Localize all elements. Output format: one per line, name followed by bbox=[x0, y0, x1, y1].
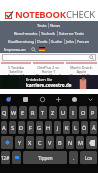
button[interactable]: Ä bbox=[90, 121, 97, 134]
button[interactable]: Sprache bbox=[39, 47, 45, 51]
button[interactable]: Suche bbox=[50, 39, 64, 44]
staticText: V bbox=[48, 139, 52, 146]
button[interactable]: Clipboard bbox=[50, 94, 66, 105]
button[interactable]: T bbox=[39, 106, 47, 119]
staticText: Tippen bbox=[38, 155, 53, 161]
button[interactable]: Hide keyboard bbox=[82, 94, 98, 105]
staticText: G bbox=[37, 124, 42, 131]
button[interactable]: Suche bbox=[30, 46, 36, 52]
staticText: Forum bbox=[77, 39, 90, 44]
button[interactable]: News bbox=[49, 23, 62, 28]
button[interactable]: Externe Tests bbox=[58, 31, 85, 36]
button[interactable]: B bbox=[56, 136, 64, 149]
staticText: Entdecken Sie bbox=[26, 77, 53, 82]
button[interactable]: W bbox=[10, 106, 17, 119]
button[interactable]: G bbox=[36, 121, 43, 134]
button[interactable]: Forum bbox=[76, 39, 91, 44]
staticText: U bbox=[61, 109, 66, 116]
button[interactable]: Macht Druck: Apple iPhone 6S Plus bbox=[66, 62, 97, 75]
button[interactable]: A bbox=[1, 121, 7, 134]
button[interactable]: V bbox=[46, 136, 54, 149]
staticText: Macht Druck: Apple iPhone 6S Plus bbox=[66, 65, 97, 75]
staticText: Tests bbox=[37, 23, 47, 28]
button[interactable]: J bbox=[54, 121, 61, 134]
button[interactable]: E bbox=[19, 106, 27, 119]
staticText: W bbox=[11, 109, 17, 116]
staticText: Technik bbox=[41, 31, 56, 36]
staticText: M bbox=[78, 139, 83, 146]
button[interactable]: Emoji bbox=[12, 151, 21, 164]
staticText: O bbox=[81, 109, 86, 116]
staticText: T bbox=[41, 109, 45, 116]
button[interactable]: L bbox=[72, 121, 79, 134]
button[interactable]: I bbox=[69, 106, 77, 119]
staticText: . bbox=[73, 154, 75, 161]
staticText: Impressum bbox=[4, 47, 26, 52]
staticText: L bbox=[74, 124, 77, 131]
button[interactable]: Tests bbox=[36, 23, 48, 28]
staticText: K bbox=[65, 124, 69, 131]
button[interactable]: Tippen bbox=[23, 151, 67, 164]
button[interactable]: Q bbox=[1, 106, 8, 119]
staticText: R bbox=[31, 109, 35, 116]
staticText: B bbox=[58, 139, 62, 146]
button[interactable]: D bbox=[18, 121, 25, 134]
staticText: H bbox=[46, 124, 51, 131]
button[interactable]: . bbox=[69, 151, 78, 164]
button[interactable]: Y bbox=[15, 136, 24, 149]
staticText: Deals bbox=[37, 39, 48, 44]
staticText: Z bbox=[51, 109, 55, 116]
staticText: X bbox=[28, 139, 32, 146]
button[interactable]: Los bbox=[80, 151, 97, 164]
button[interactable]: C bbox=[36, 136, 44, 149]
button[interactable]: Ö bbox=[81, 121, 88, 134]
staticText: CHECK bbox=[66, 8, 95, 21]
staticText: Benchmarks bbox=[14, 31, 38, 36]
staticText: D bbox=[19, 124, 24, 131]
button[interactable]: Löschen bbox=[86, 136, 97, 149]
button[interactable]: Z bbox=[49, 106, 57, 119]
button[interactable]: 5 Toshiba Satellite Radius 14 bbox=[1, 62, 31, 75]
button[interactable]: O bbox=[79, 106, 87, 119]
button[interactable]: Settings bbox=[66, 94, 82, 105]
button[interactable]: U bbox=[59, 106, 67, 119]
staticText: N bbox=[68, 139, 73, 146]
button[interactable]: M bbox=[76, 136, 84, 149]
button[interactable]: S bbox=[9, 121, 16, 134]
staticText: Jobs bbox=[66, 39, 74, 44]
staticText: karriere.covestro.de bbox=[26, 82, 72, 88]
staticText: S bbox=[11, 124, 15, 131]
staticText: J bbox=[57, 124, 59, 131]
button[interactable]: F bbox=[27, 121, 34, 134]
staticText: A bbox=[2, 124, 6, 131]
button[interactable]: Emoji bbox=[34, 94, 50, 105]
button[interactable] bbox=[2, 54, 96, 61]
staticText: Kaufberatung bbox=[8, 39, 34, 44]
staticText: News bbox=[50, 23, 61, 28]
button[interactable]: Jobs bbox=[65, 39, 75, 44]
button[interactable]: Google Assistant bbox=[0, 94, 17, 105]
staticText: Ö bbox=[82, 124, 87, 131]
staticText: Suche bbox=[51, 39, 63, 44]
staticText: I bbox=[72, 109, 74, 116]
button[interactable]: N bbox=[66, 136, 74, 149]
button[interactable]: H bbox=[45, 121, 52, 134]
button[interactable]: P bbox=[89, 106, 97, 119]
button[interactable]: Kaufberatung bbox=[7, 39, 35, 44]
button[interactable]: Benchmarks bbox=[13, 31, 39, 36]
staticText: Q bbox=[2, 109, 7, 116]
button[interactable]: Shift bbox=[1, 136, 13, 149]
button[interactable]: K bbox=[63, 121, 70, 134]
staticText: 5 Toshiba Satellite Radius 14 bbox=[1, 65, 31, 75]
button[interactable]: R bbox=[29, 106, 37, 119]
button[interactable]: Entdecken Sie bbox=[0, 75, 98, 89]
button[interactable]: Deals bbox=[36, 39, 49, 44]
staticText: Ä bbox=[92, 124, 96, 131]
button[interactable]: OnePlus 2 vs. Honor 7 Plus vs. Moto X Pl… bbox=[33, 62, 64, 75]
staticText: Externe Tests bbox=[59, 31, 84, 36]
button[interactable]: 12# bbox=[1, 151, 10, 164]
button[interactable]: X bbox=[26, 136, 34, 149]
button[interactable]: Stickers bbox=[17, 94, 34, 105]
button[interactable]: Impressum bbox=[3, 47, 27, 52]
button[interactable]: Technik bbox=[40, 31, 57, 36]
